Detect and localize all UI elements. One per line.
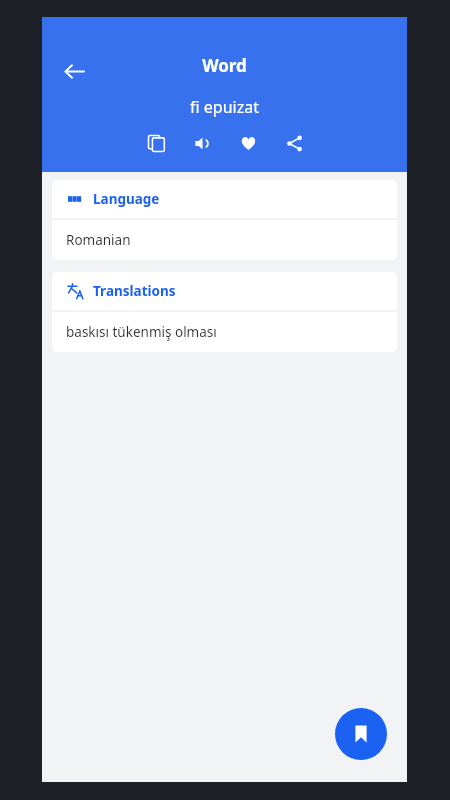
button[interactable]: Language: [52, 180, 397, 218]
button[interactable]: Listen: [189, 130, 215, 156]
button[interactable]: Back: [52, 49, 96, 93]
button[interactable]: Favorite: [235, 130, 261, 156]
staticText: fi epuizat: [190, 96, 259, 118]
staticText: Romanian: [66, 231, 131, 249]
button[interactable]: baskısı tükenmiş olması: [52, 312, 397, 352]
button[interactable]: Share: [281, 130, 307, 156]
staticText: baskısı tükenmiş olması: [66, 323, 217, 341]
button[interactable]: Romanian: [52, 220, 397, 260]
staticText: Word: [202, 54, 247, 77]
staticText: Translations: [93, 282, 176, 300]
button[interactable]: Bookmark: [335, 708, 387, 760]
button[interactable]: Translations: [52, 272, 397, 310]
staticText: Language: [93, 190, 160, 208]
button[interactable]: Copy: [143, 130, 169, 156]
